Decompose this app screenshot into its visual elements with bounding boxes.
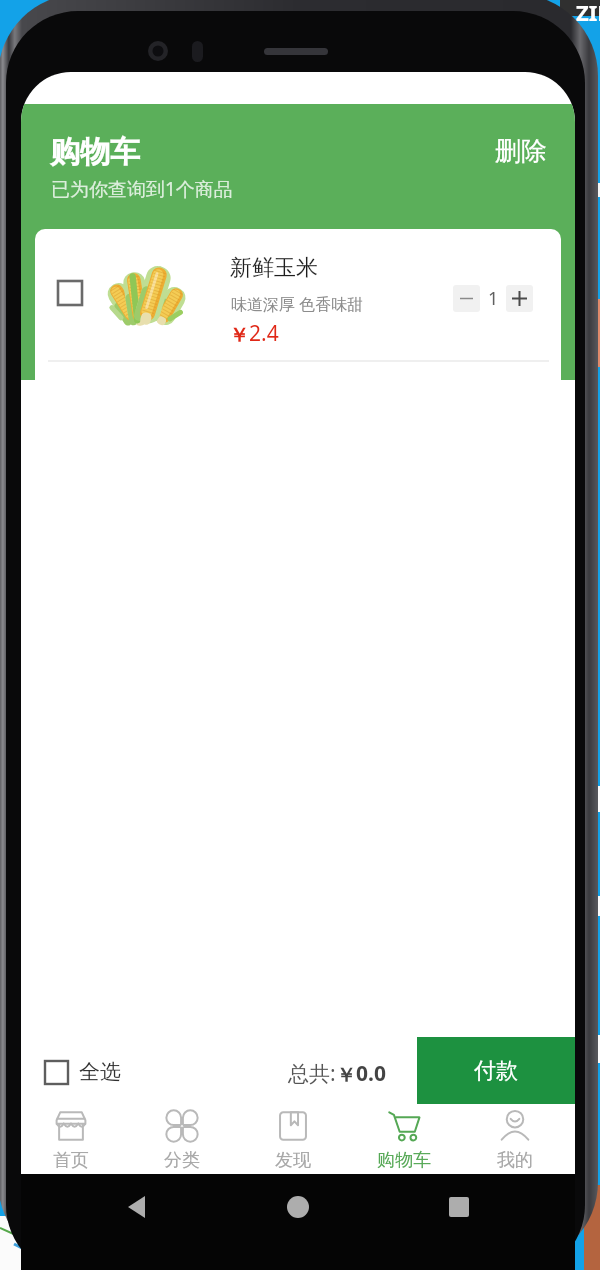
staticText: 0.0: [356, 1059, 386, 1088]
button[interactable]: 我的: [459, 1104, 570, 1174]
button[interactable]: Select 新鲜玉米: [40, 263, 100, 323]
button[interactable]: Increase quantity: [506, 285, 533, 312]
button[interactable]: Decrease quantity: [453, 285, 480, 312]
staticText: ZIP: [576, 0, 600, 27]
button[interactable]: 分类: [126, 1104, 237, 1174]
staticText: 付款: [474, 1057, 518, 1085]
staticText: 购物车: [377, 1149, 431, 1172]
staticText: 总共:: [288, 1059, 336, 1088]
staticText: 发现: [275, 1149, 311, 1172]
staticText: ￥: [229, 323, 249, 348]
button[interactable]: 全选: [35, 1050, 185, 1094]
button[interactable]: 购物车: [348, 1104, 459, 1174]
staticText: 我的: [497, 1149, 533, 1172]
staticText: ￥: [336, 1063, 356, 1088]
staticText: 分类: [164, 1149, 200, 1172]
button[interactable]: 付款: [417, 1037, 575, 1104]
button[interactable]: 首页: [21, 1104, 126, 1174]
staticText: 2.4: [249, 319, 279, 348]
staticText: 全选: [79, 1059, 121, 1085]
staticText: 购物车: [50, 133, 140, 171]
button[interactable]: 发现: [237, 1104, 348, 1174]
staticText: 新鲜玉米: [230, 254, 318, 282]
button[interactable]: 删除: [483, 132, 559, 170]
staticText: 味道深厚 色香味甜: [231, 293, 364, 315]
staticText: 1: [488, 286, 499, 311]
staticText: 已为你查询到1个商品: [51, 176, 233, 202]
staticText: 删除: [495, 135, 547, 168]
staticText: 首页: [53, 1149, 89, 1172]
